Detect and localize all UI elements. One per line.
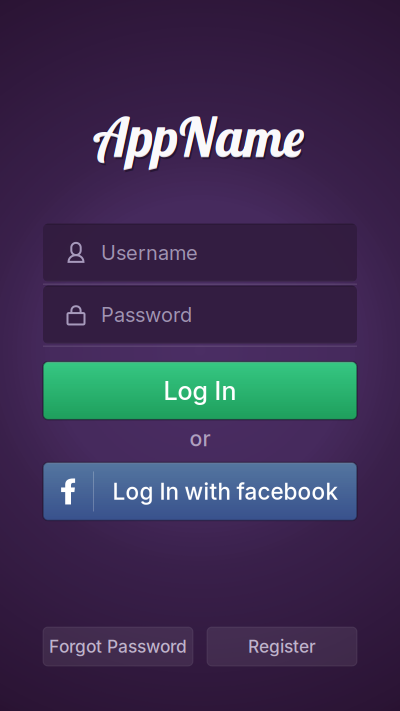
- staticText: or: [189, 426, 210, 451]
- staticText: AppName: [95, 103, 304, 170]
- staticText: Password: [101, 303, 192, 327]
- staticText: Forgot Password: [49, 636, 187, 657]
- staticText: Log In with facebook: [112, 478, 338, 505]
- button[interactable]: Log In with facebook: [43, 462, 357, 520]
- staticText: Log In: [163, 375, 236, 406]
- staticText: AppName: [97, 106, 306, 173]
- button[interactable]: Register: [207, 627, 357, 666]
- button[interactable]: Log In: [43, 362, 357, 420]
- staticText: AppName: [95, 104, 304, 171]
- button[interactable]: Forgot Password: [43, 627, 193, 666]
- staticText: Username: [101, 241, 198, 265]
- staticText: Register: [248, 636, 316, 657]
